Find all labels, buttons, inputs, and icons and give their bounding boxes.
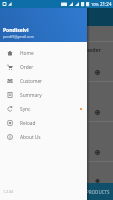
staticText: Customer bbox=[20, 78, 43, 85]
staticText: 10% bbox=[91, 2, 99, 7]
button[interactable]: Home bbox=[0, 46, 87, 60]
staticText: sub bbox=[2, 94, 9, 99]
staticText: Reload bbox=[20, 120, 36, 127]
button[interactable]: Item bbox=[0, 82, 113, 122]
button[interactable]: About Us bbox=[0, 130, 87, 144]
button[interactable]: Reload bbox=[0, 116, 87, 130]
button[interactable]: Item bbox=[0, 162, 113, 183]
staticText: Home bbox=[20, 50, 34, 57]
staticText: Summary bbox=[20, 92, 42, 99]
button[interactable]: Sync bbox=[0, 102, 87, 116]
button[interactable]: Order bbox=[0, 60, 87, 74]
button[interactable]: Item bbox=[0, 122, 113, 162]
staticText: Order bbox=[20, 64, 34, 71]
staticText: Item bbox=[2, 86, 15, 93]
staticText: PRODUCTS bbox=[86, 189, 110, 195]
staticText: 21:24 bbox=[100, 1, 112, 7]
button[interactable]: Add bbox=[93, 179, 102, 183]
button[interactable]: PRODUCTS bbox=[83, 185, 113, 199]
staticText: Pondiselvi bbox=[3, 27, 29, 34]
staticText: sub bbox=[2, 134, 9, 139]
staticText: Ambur Special Biriyani Masala Powder Pac… bbox=[2, 46, 113, 53]
button[interactable]: Ambur Special Biriyani Masala Powder Pac… bbox=[0, 42, 113, 82]
staticText: 1.2.04 bbox=[3, 189, 14, 194]
button[interactable]: Add bbox=[93, 148, 102, 157]
staticText: Sync bbox=[20, 106, 31, 113]
button[interactable]: Customer bbox=[0, 74, 87, 88]
staticText: MRP Rs 120.00 Available Stock : 24 pkt bbox=[2, 54, 74, 59]
button[interactable]: Add bbox=[93, 68, 102, 77]
staticText: About Us bbox=[20, 134, 41, 141]
button[interactable]: Add bbox=[93, 108, 102, 117]
staticText: pondi9@gmail.com bbox=[3, 34, 34, 39]
button[interactable]: Summary bbox=[0, 88, 87, 102]
